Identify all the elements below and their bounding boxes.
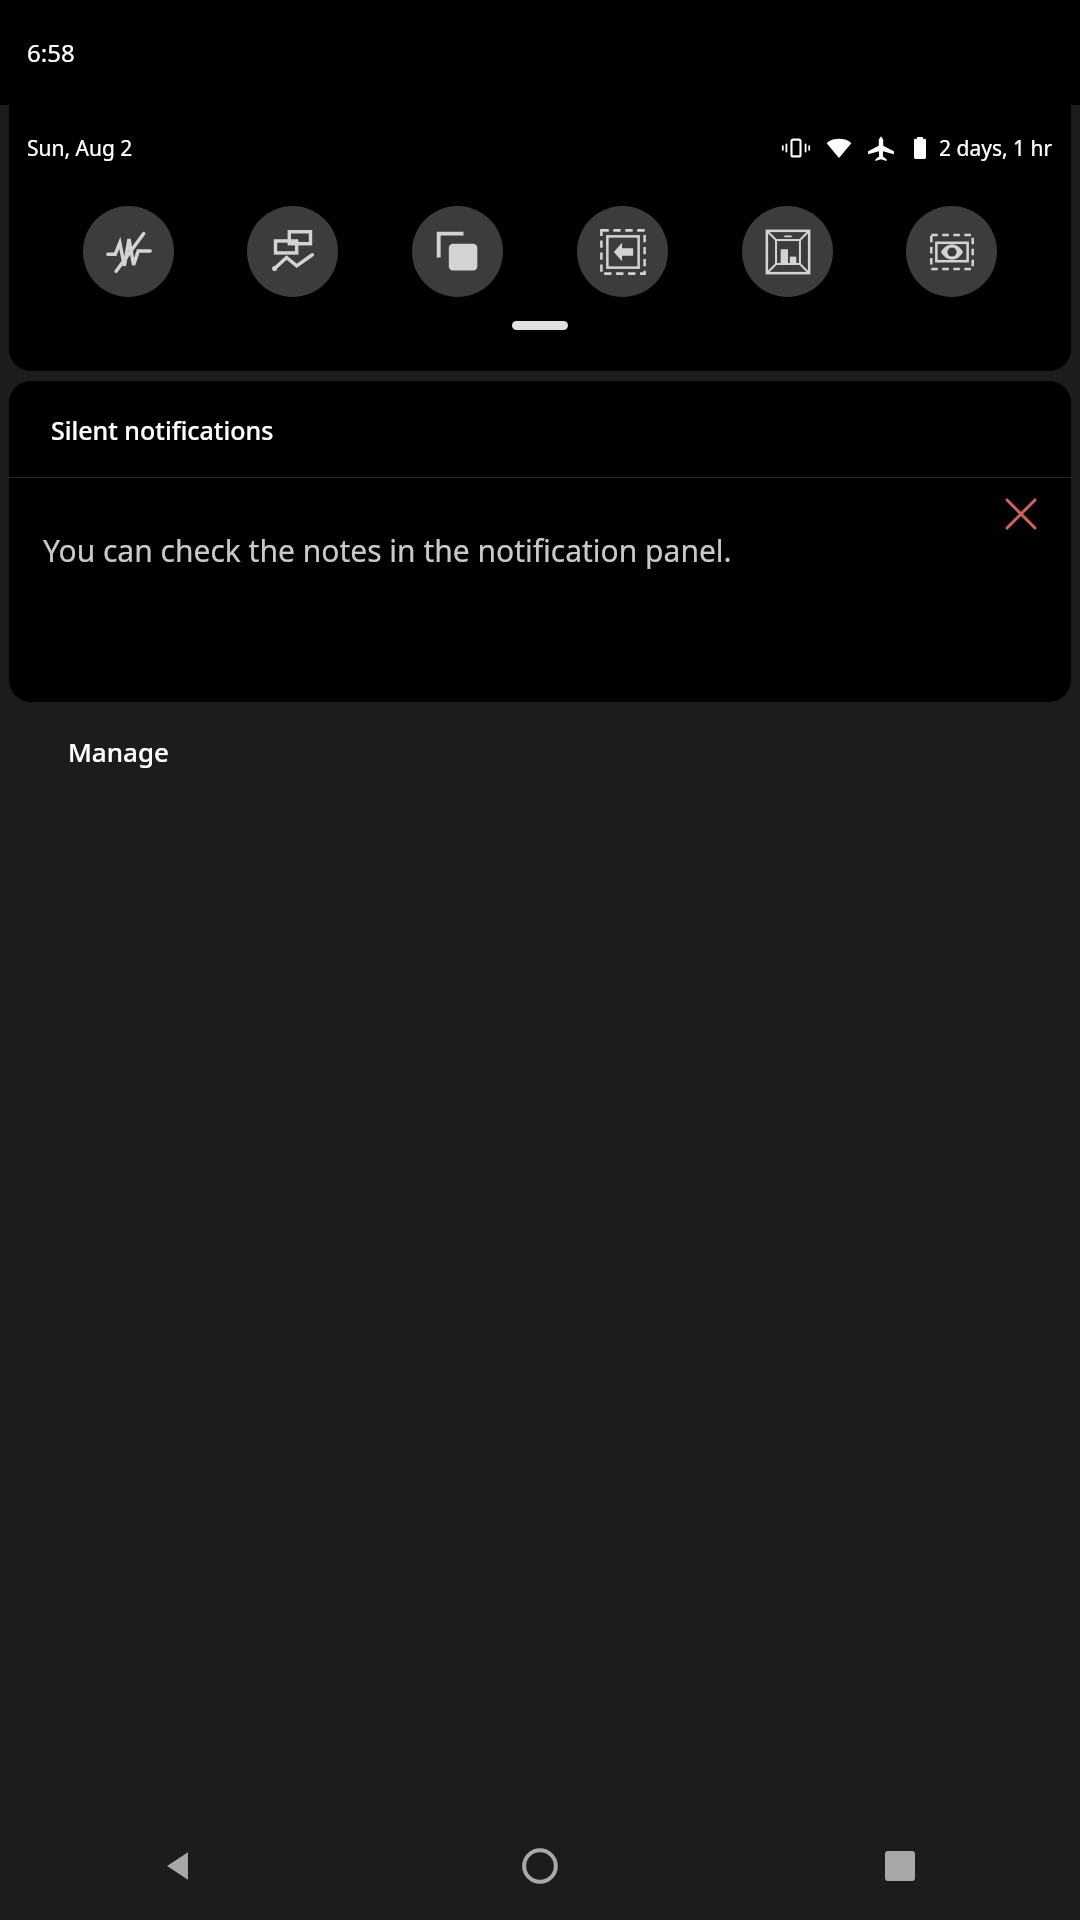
button[interactable]: Silent notifications — [9, 381, 1071, 478]
button[interactable]: Copy — [412, 206, 503, 297]
staticText: You can check the notes in the notificat… — [43, 530, 732, 571]
button[interactable]: Preview — [906, 206, 997, 297]
button[interactable]: Sound off — [83, 206, 174, 297]
button[interactable]: Screen record — [247, 206, 338, 297]
button[interactable]: Back — [0, 1812, 360, 1920]
button[interactable]: Dismiss notification — [993, 486, 1049, 542]
button[interactable]: Manage — [0, 702, 1080, 800]
button[interactable]: Room view — [742, 206, 833, 297]
staticText: Sun, Aug 2 — [27, 134, 133, 163]
staticText: Silent notifications — [51, 413, 274, 447]
button[interactable]: Recent apps — [720, 1812, 1080, 1920]
staticText: 2 days, 1 hr — [939, 134, 1053, 163]
button[interactable]: Home — [360, 1812, 720, 1920]
button[interactable]: You can check the notes in the notificat… — [9, 478, 1071, 702]
button[interactable]: Back gesture — [577, 206, 668, 297]
staticText: 6:58 — [27, 36, 75, 69]
staticText: Manage — [68, 734, 169, 769]
